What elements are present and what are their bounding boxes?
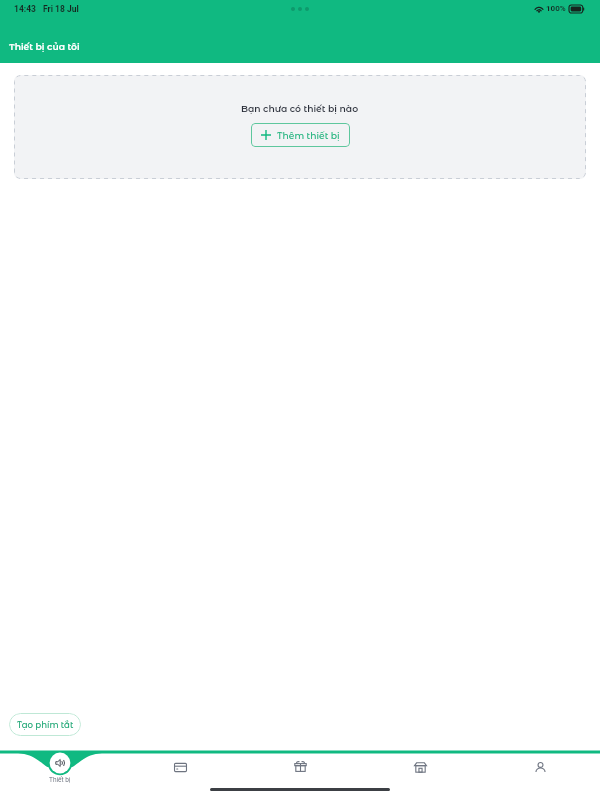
staticText: Thiết bị: [49, 776, 71, 784]
button[interactable]: Cửa hàng: [360, 750, 480, 800]
staticText: Tạo phím tắt: [17, 720, 74, 730]
staticText: Thiết bị của tôi: [9, 41, 80, 52]
staticText: 100%: [546, 4, 566, 13]
button[interactable]: Tài khoản: [480, 750, 600, 800]
button[interactable]: Thẻ: [120, 750, 240, 800]
staticText: Thêm thiết bị: [277, 130, 340, 141]
button[interactable]: Quà tặng: [240, 750, 360, 800]
staticText: Bạn chưa có thiết bị nào: [241, 103, 359, 114]
staticText: 14:43: [14, 4, 36, 14]
button[interactable]: Thiết bị: [0, 750, 120, 800]
staticText: Fri 18 Jul: [43, 4, 79, 14]
button[interactable]: Tạo phím tắt: [9, 713, 81, 736]
button[interactable]: Thêm thiết bị: [251, 123, 350, 147]
